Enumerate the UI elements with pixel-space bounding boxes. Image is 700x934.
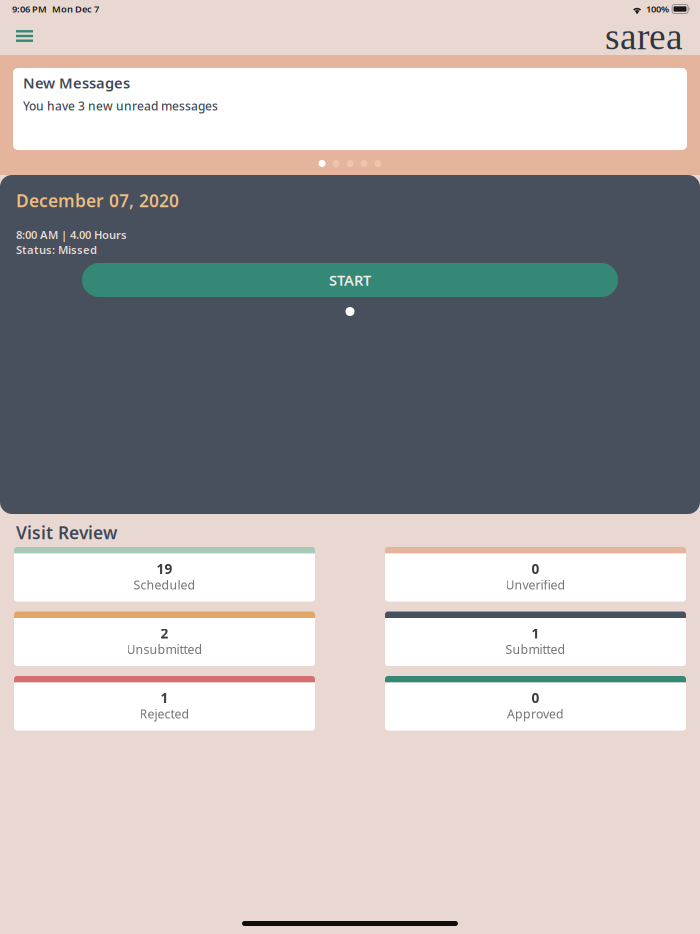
staticText: Mon Dec 7 xyxy=(52,3,99,15)
button[interactable]: 0 xyxy=(385,547,686,601)
staticText: 100% xyxy=(646,3,669,15)
staticText: Submitted xyxy=(505,641,565,658)
button[interactable]: 0 xyxy=(385,676,686,730)
staticText: START xyxy=(329,270,371,290)
staticText: 2 xyxy=(160,624,168,642)
staticText: Rejected xyxy=(139,705,189,722)
staticText: 8:00 AM | 4.00 Hours xyxy=(16,227,127,242)
staticText: 1 xyxy=(531,624,539,642)
button[interactable]: 1 xyxy=(385,611,686,666)
staticText: 19 xyxy=(156,559,172,578)
button[interactable]: New Messages xyxy=(13,68,687,150)
button[interactable]: START xyxy=(82,263,618,297)
staticText: Unsubmitted xyxy=(126,641,202,658)
button[interactable]: 1 xyxy=(14,676,315,730)
staticText: 0 xyxy=(531,559,539,578)
staticText: 1 xyxy=(160,688,168,707)
staticText: December 07, 2020 xyxy=(16,189,179,212)
staticText: sarea xyxy=(605,16,683,57)
staticText: You have 3 new unread messages xyxy=(23,98,218,114)
staticText: Status: Missed xyxy=(16,242,97,257)
button[interactable]: 2 xyxy=(14,611,315,666)
staticText: Unverified xyxy=(505,576,565,593)
staticText: Scheduled xyxy=(133,576,195,593)
staticText: 9:06 PM xyxy=(12,3,47,15)
button[interactable]: 19 xyxy=(14,547,315,601)
button[interactable]: Menu xyxy=(0,21,47,51)
staticText: New Messages xyxy=(23,73,130,92)
staticText: Approved xyxy=(507,705,564,722)
staticText: Visit Review xyxy=(16,521,117,544)
staticText: 0 xyxy=(531,688,539,707)
